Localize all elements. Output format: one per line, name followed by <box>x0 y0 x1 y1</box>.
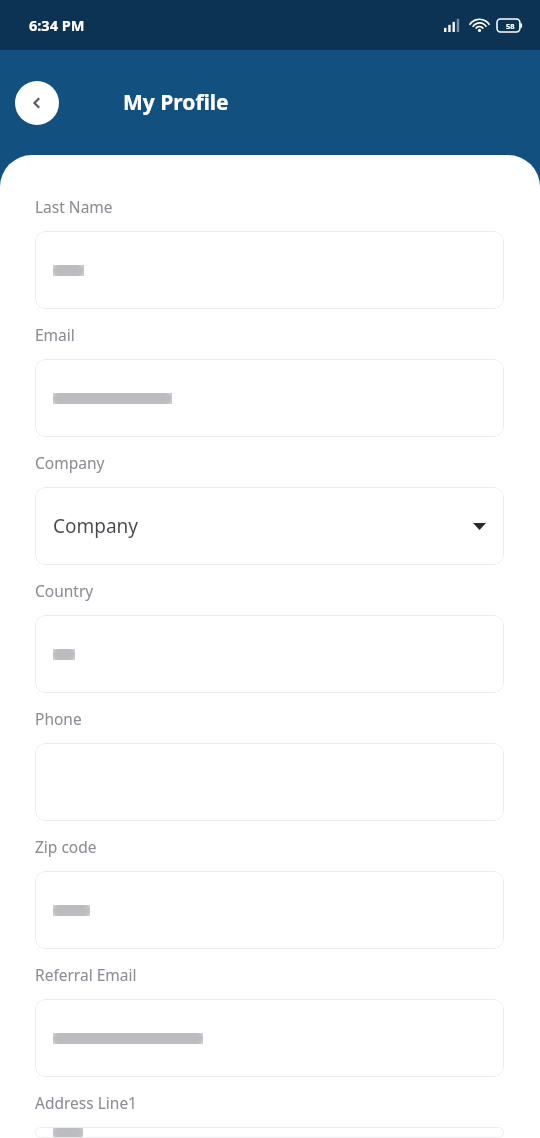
staticText: Address Line1 <box>35 1092 137 1113</box>
button[interactable]: Company <box>35 487 504 565</box>
staticText: Company <box>35 452 105 473</box>
button[interactable] <box>35 999 504 1077</box>
button[interactable] <box>35 1127 504 1138</box>
button[interactable] <box>35 871 504 949</box>
button[interactable] <box>35 615 504 693</box>
button[interactable]: Back <box>15 81 59 125</box>
button[interactable] <box>35 231 504 309</box>
staticText: 6:34 PM <box>29 15 85 35</box>
staticText: Referral Email <box>35 964 137 985</box>
staticText: Zip code <box>35 836 97 857</box>
button[interactable] <box>35 743 504 821</box>
staticText: Company <box>53 513 473 539</box>
staticText: Last Name <box>35 196 113 217</box>
staticText: 58 <box>506 21 515 31</box>
staticText: My Profile <box>123 88 229 117</box>
staticText: Email <box>35 324 75 345</box>
staticText: Phone <box>35 708 82 729</box>
staticText: Country <box>35 580 94 601</box>
button[interactable] <box>35 359 504 437</box>
